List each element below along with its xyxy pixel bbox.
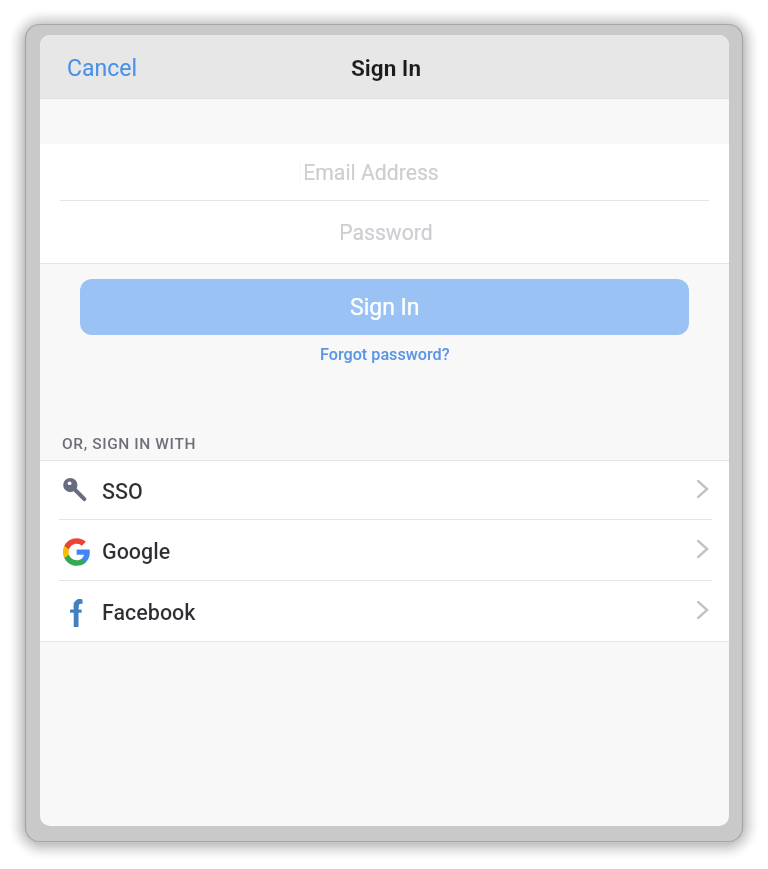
staticText: Password <box>339 220 433 245</box>
other: Open Google <box>691 538 713 560</box>
button[interactable]: Facebook <box>40 581 729 641</box>
other: Open Facebook <box>691 599 713 621</box>
button[interactable]: Forgot password? <box>308 341 462 368</box>
staticText: Sign In <box>351 55 422 81</box>
button[interactable]: Cancel <box>40 39 165 94</box>
button[interactable]: SSO <box>40 461 729 519</box>
button[interactable]: Sign In <box>80 279 689 335</box>
staticText: Forgot password? <box>320 345 450 364</box>
button[interactable]: Password <box>40 201 729 263</box>
staticText: OR, SIGN IN WITH <box>62 435 197 453</box>
staticText: Email Address <box>303 160 439 185</box>
other: Open SSO <box>691 478 713 500</box>
staticText: Sign In <box>350 294 420 321</box>
staticText: Google <box>102 539 171 564</box>
staticText: Cancel <box>67 55 138 82</box>
staticText: SSO <box>102 479 143 504</box>
button[interactable]: Email Address <box>40 144 729 200</box>
button[interactable]: Google <box>40 520 729 580</box>
staticText: Facebook <box>102 600 196 625</box>
